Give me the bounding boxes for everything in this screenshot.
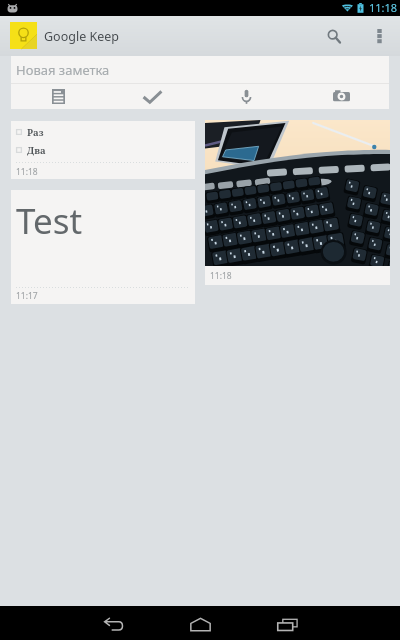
button[interactable]: Google Keep xyxy=(10,22,37,49)
staticText: 11:18 xyxy=(16,166,38,178)
staticText: 11:17 xyxy=(16,290,38,302)
staticText: Два xyxy=(27,144,46,156)
staticText: Google Keep xyxy=(44,28,119,45)
button[interactable]: New photo note xyxy=(294,84,389,109)
button[interactable]: Back xyxy=(92,606,136,640)
button[interactable]: Search xyxy=(318,16,351,56)
button[interactable]: New voice note xyxy=(199,84,294,109)
button[interactable]: Home xyxy=(178,606,222,640)
button[interactable]: Recent apps xyxy=(264,606,308,640)
button[interactable]: New checklist xyxy=(105,84,199,109)
button[interactable]: More options xyxy=(365,16,393,56)
button[interactable]: 11:18 xyxy=(205,120,390,285)
button[interactable]: Раз xyxy=(11,121,195,179)
staticText: Раз xyxy=(27,126,44,138)
button[interactable]: Test xyxy=(11,190,195,304)
staticText: Test xyxy=(16,197,83,245)
button[interactable]: New list xyxy=(11,84,105,109)
button[interactable]: Новая заметка xyxy=(11,56,389,83)
staticText: 11:18 xyxy=(369,0,398,15)
staticText: Новая заметка xyxy=(16,61,110,79)
staticText: 11:18 xyxy=(210,270,232,282)
